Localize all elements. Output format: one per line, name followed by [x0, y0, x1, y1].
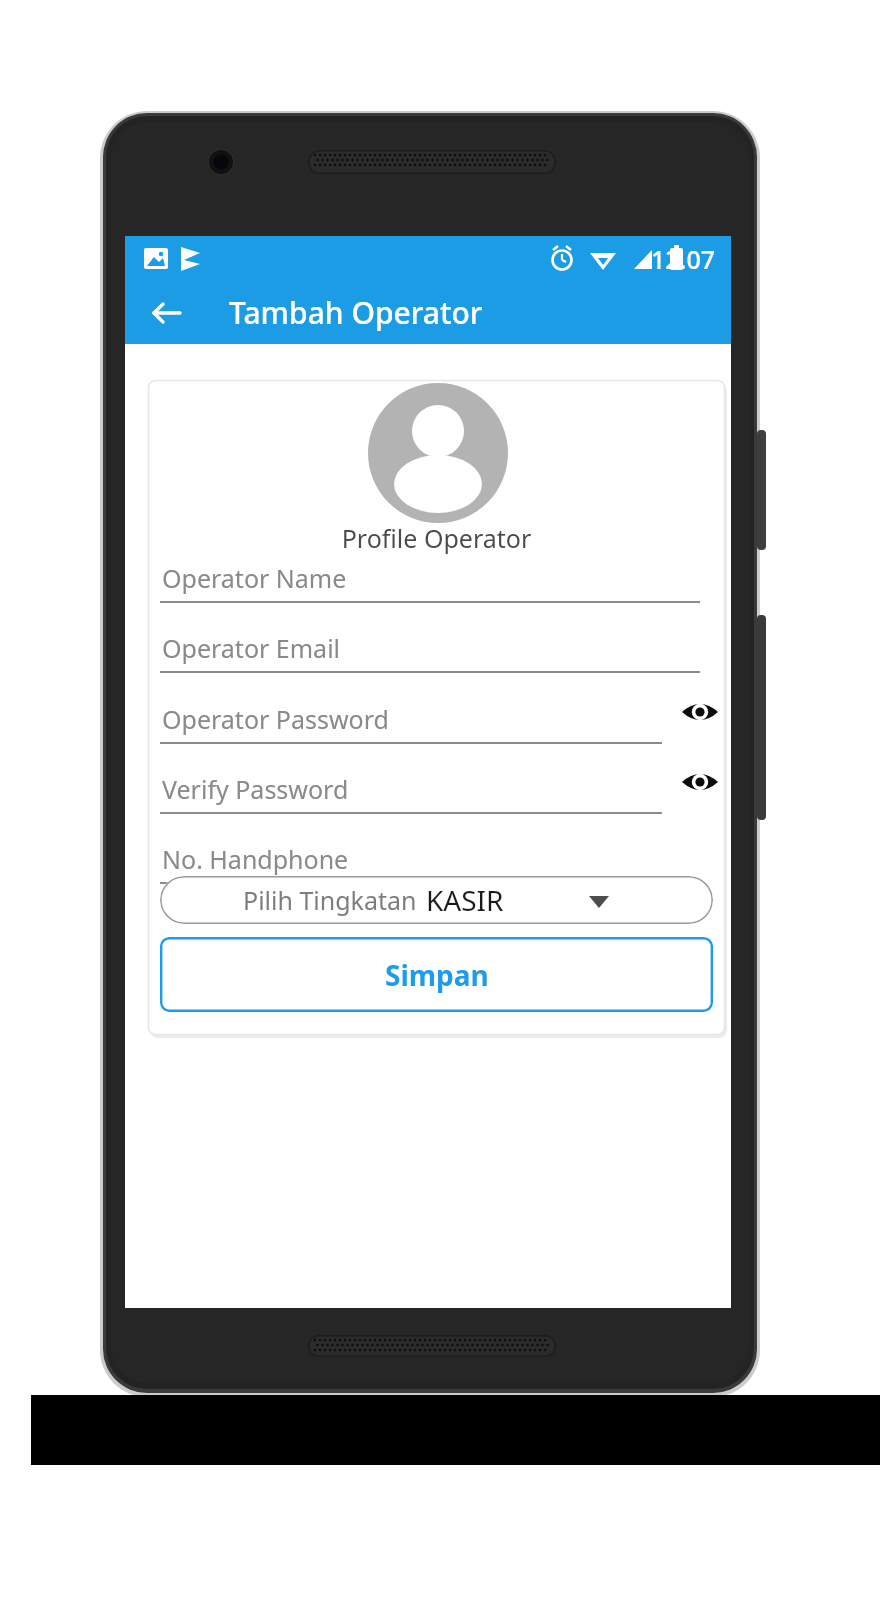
staticText: Verify Password	[162, 772, 349, 806]
button[interactable]: No. Handphone	[160, 839, 705, 891]
staticText: Simpan	[385, 956, 489, 994]
staticText: No. Handphone	[162, 842, 349, 876]
staticText: Profile Operator	[148, 521, 725, 555]
button[interactable]: Operator Email	[160, 628, 705, 680]
staticText: Operator Email	[162, 631, 341, 665]
staticText: KASIR	[426, 881, 504, 919]
button[interactable]: Pilih Tingkatan	[160, 876, 713, 924]
button[interactable]: Operator Name	[160, 558, 705, 610]
staticText: Pilih Tingkatan	[243, 883, 417, 917]
button[interactable]: Operator Password	[160, 699, 665, 751]
staticText: 12.07	[651, 242, 716, 276]
staticText: Tambah Operator	[229, 292, 483, 333]
staticText: Operator Name	[162, 561, 347, 595]
button[interactable]: Profile photo	[358, 383, 518, 543]
button[interactable]: Simpan	[160, 937, 713, 1012]
button[interactable]: Verify Password	[160, 769, 665, 821]
staticText: Operator Password	[162, 702, 389, 736]
button[interactable]: Back	[143, 289, 191, 337]
button[interactable]: Show password	[676, 688, 724, 736]
button[interactable]: Show password	[676, 758, 724, 806]
